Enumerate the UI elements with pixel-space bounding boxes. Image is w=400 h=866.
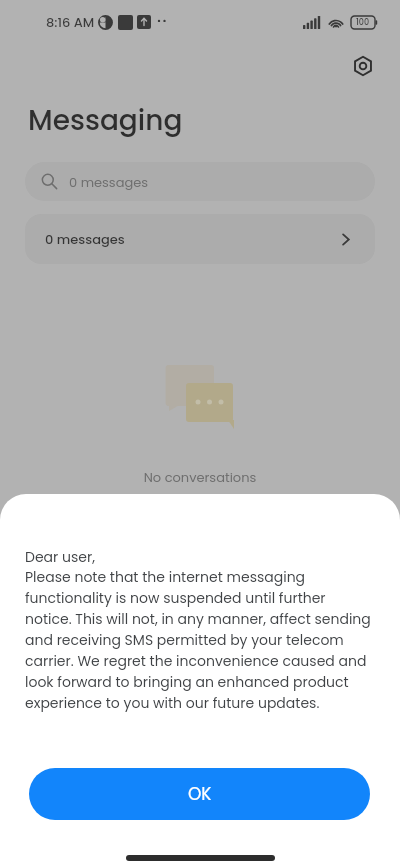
button[interactable]: 0 messages xyxy=(25,162,375,201)
button[interactable]: Settings xyxy=(349,52,377,80)
staticText: 0 messages xyxy=(45,230,125,248)
button[interactable]: 0 messages xyxy=(25,214,375,264)
staticText: Messaging xyxy=(28,101,183,140)
staticText: 0 messages xyxy=(69,173,149,191)
button[interactable]: OK xyxy=(29,768,370,820)
staticText: Dear user, Please note that the internet… xyxy=(25,547,375,713)
staticText: No conversations xyxy=(0,468,400,486)
staticText: OK xyxy=(188,782,212,806)
staticText: 8:16 AM xyxy=(46,13,95,31)
staticText: 100 xyxy=(356,17,370,28)
